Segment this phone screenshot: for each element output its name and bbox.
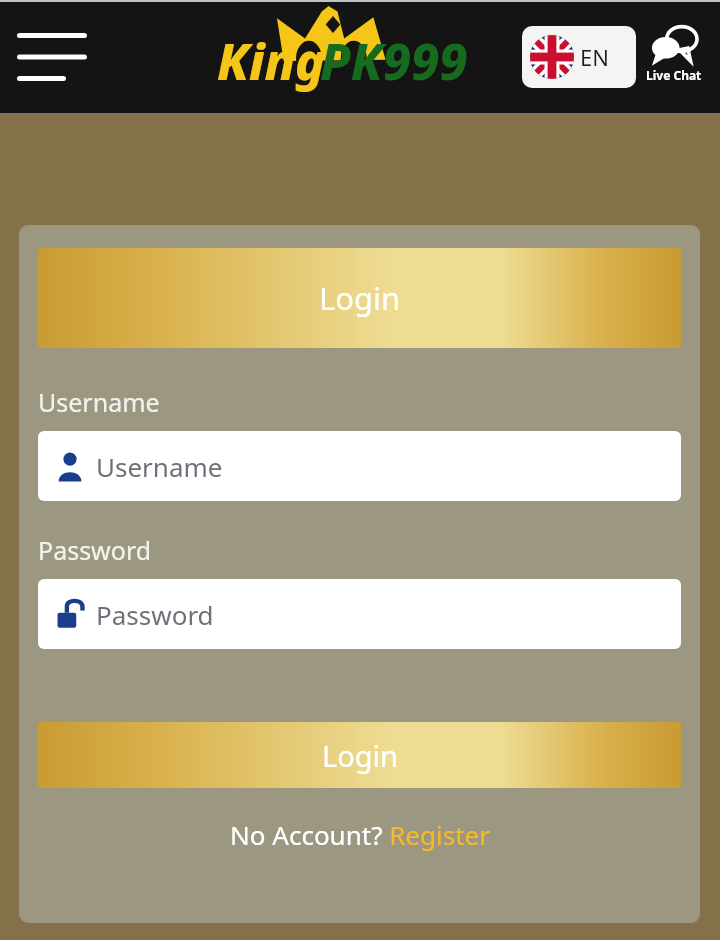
staticText: No Account? Register [230,817,490,852]
button[interactable]: KingPK999 home [195,4,495,109]
staticText: Login [319,277,401,319]
staticText: Live Chat [646,67,702,83]
staticText: Password [38,533,152,567]
button[interactable]: Username [38,431,681,501]
button[interactable]: EN [522,26,636,88]
staticText: King [217,27,326,95]
button[interactable]: Login [38,722,681,788]
staticText: Login [322,736,398,775]
staticText: Username [96,449,223,484]
button[interactable]: Menu [12,24,92,90]
staticText: Password [96,597,214,632]
button[interactable]: Live Chat [641,16,707,92]
staticText: PK999 [320,27,468,95]
button[interactable]: No Account? Register [38,812,681,856]
staticText: Username [38,385,160,419]
button[interactable]: Login [38,248,681,348]
button[interactable]: Password [38,579,681,649]
staticText: EN [580,42,609,72]
